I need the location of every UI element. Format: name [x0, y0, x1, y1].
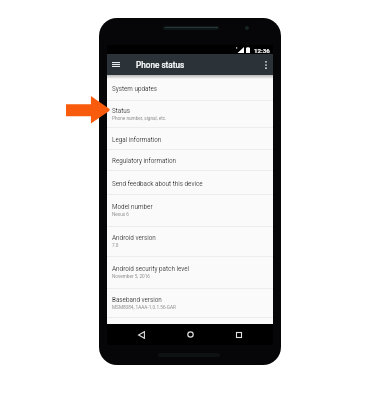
staticText: Send feedback about this device: [112, 180, 203, 187]
button[interactable]: Model number: [107, 195, 273, 226]
staticText: November 5, 2016: [112, 274, 150, 280]
staticText: Phone number, signal, etc.: [112, 116, 167, 122]
staticText: Android security patch level: [112, 265, 190, 272]
staticText: System updates: [112, 85, 158, 92]
staticText: MSM8084, 1AAA-1.0.1.56-GAR: [112, 305, 177, 311]
button[interactable]: Regulatory information: [107, 150, 273, 171]
staticText: 7.0: [112, 243, 119, 249]
other: Highlight pointer: [0, 0, 380, 400]
button[interactable]: Baseband version: [107, 288, 273, 318]
button[interactable]: Open navigation menu: [107, 54, 124, 75]
staticText: Nexus 6: [112, 212, 129, 218]
staticText: Baseband version: [112, 296, 162, 303]
button[interactable]: Status: [107, 101, 273, 128]
staticText: Legal information: [112, 136, 162, 143]
button[interactable]: More options: [258, 54, 273, 75]
staticText: Phone status: [136, 60, 185, 70]
button[interactable]: Home: [175, 324, 205, 345]
button[interactable]: Android security patch level: [107, 257, 273, 288]
staticText: Model number: [112, 203, 153, 210]
button[interactable]: Send feedback about this device: [107, 171, 273, 195]
staticText: 12:36: [254, 47, 270, 54]
staticText: Android version: [112, 234, 156, 241]
button[interactable]: System updates: [107, 77, 273, 100]
button[interactable]: Legal information: [107, 128, 273, 150]
button[interactable]: Back: [126, 324, 156, 345]
staticText: Regulatory information: [112, 157, 177, 164]
staticText: Status: [112, 107, 131, 114]
button[interactable]: Recent apps: [224, 324, 254, 345]
button[interactable]: Android version: [107, 226, 273, 256]
